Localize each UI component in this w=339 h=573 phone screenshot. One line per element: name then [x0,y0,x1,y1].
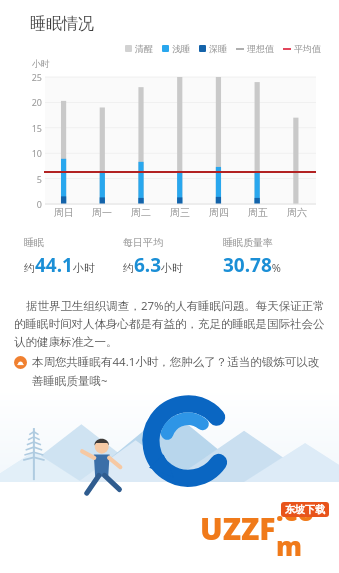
staticText: 周三 [170,206,190,219]
staticText: 理想值 [247,43,274,54]
staticText: 睡眠质量率 [223,236,273,249]
staticText: 每日平均 [123,236,163,249]
staticText: 约44.1小时 [24,252,95,278]
staticText: 清醒 [135,43,153,54]
staticText: 睡眠 [24,236,44,249]
staticText: 周二 [131,206,151,219]
staticText: 25 [0,71,42,83]
staticText: 周一 [92,206,112,219]
staticText: 5 [0,173,42,185]
button[interactable]: 睡眠质量率 [223,236,323,278]
staticText: .com [276,493,339,563]
staticText: 睡眠情况 [30,14,94,34]
other: 提示 [14,356,27,369]
staticText: 15 [0,122,42,134]
staticText: 周日 [54,206,74,219]
staticText: 周五 [248,206,268,219]
staticText: 本周您共睡眠有44.1小时，您肿么了？适当的锻炼可以改善睡眠质量哦~ [32,354,325,389]
staticText: 据世界卫生组织调查，27%的人有睡眠问题。每天保证正常的睡眠时间对人体身心都是有… [14,298,325,350]
staticText: 30.78% [223,252,281,278]
staticText: 周四 [209,206,229,219]
staticText: 浅睡 [172,43,190,54]
staticText: 10 [0,147,42,159]
button[interactable]: 睡眠 [24,236,123,278]
staticText: 小时 [32,58,50,69]
staticText: 0 [0,198,42,210]
staticText: 平均值 [294,43,321,54]
button[interactable]: 每日平均 [123,236,223,278]
staticText: 深睡 [209,43,227,54]
staticText: 东坡下载 [285,503,325,516]
staticText: 约6.3小时 [123,252,184,278]
staticText: 周六 [287,206,307,219]
staticText: UZZF [200,508,276,549]
staticText: 20 [0,96,42,108]
